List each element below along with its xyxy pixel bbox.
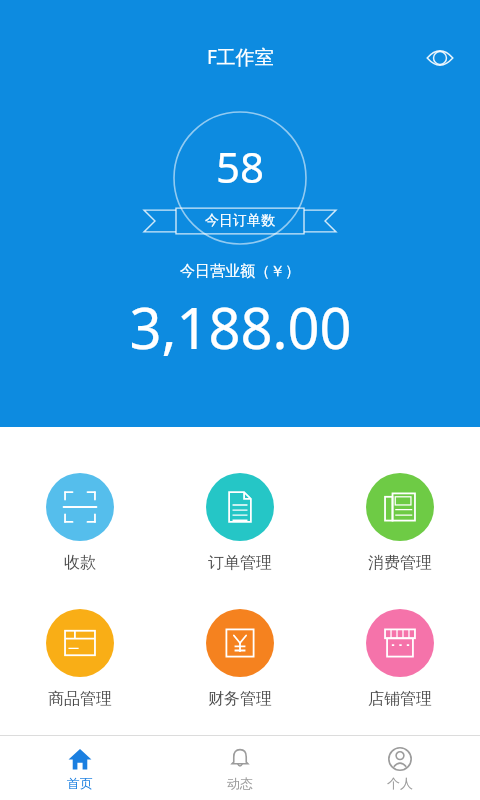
button[interactable]: 店铺管理: [320, 607, 480, 711]
staticText: 个人: [387, 775, 413, 791]
staticText: 首页: [67, 775, 93, 791]
button[interactable]: 个人: [320, 736, 480, 800]
button[interactable]: 商品管理: [0, 607, 160, 711]
staticText: 财务管理: [208, 689, 272, 709]
button[interactable]: 财务管理: [160, 607, 320, 711]
staticText: 收款: [64, 553, 96, 573]
staticText: 订单管理: [208, 553, 272, 573]
staticText: F工作室: [207, 44, 274, 70]
staticText: 58: [216, 138, 265, 195]
staticText: 消费管理: [368, 553, 432, 573]
button[interactable]: 动态: [160, 736, 320, 800]
staticText: 商品管理: [48, 689, 112, 709]
button[interactable]: Toggle visibility: [420, 38, 460, 78]
staticText: 今日营业额（￥）: [180, 262, 300, 281]
staticText: 3,188.00: [129, 289, 352, 365]
button[interactable]: 首页: [0, 736, 160, 800]
button[interactable]: 收款: [0, 471, 160, 575]
button[interactable]: 订单管理: [160, 471, 320, 575]
staticText: 店铺管理: [368, 689, 432, 709]
staticText: 动态: [227, 775, 253, 791]
button[interactable]: 消费管理: [320, 471, 480, 575]
staticText: 今日订单数: [205, 212, 275, 230]
